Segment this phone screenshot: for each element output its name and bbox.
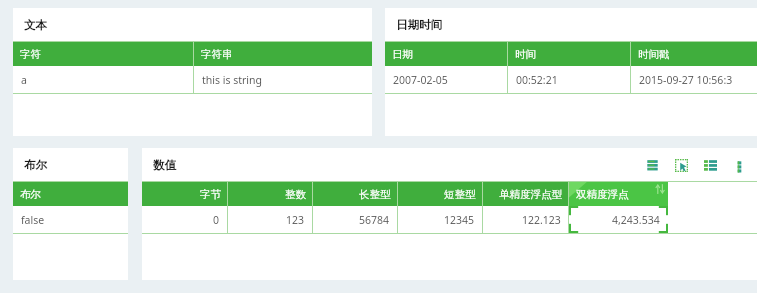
staticText: 时间 [515,48,536,61]
staticText: 短整型 [444,188,476,201]
button[interactable]: 0 [142,206,228,233]
button[interactable]: 12345 [398,206,483,233]
button[interactable]: 日期 [385,42,508,66]
button[interactable]: 2007-02-05 [385,66,508,93]
button[interactable]: a [13,66,194,93]
staticText: 12345 [444,213,475,227]
staticText: 字符串 [201,48,233,61]
button[interactable]: 短整型 [398,182,483,206]
staticText: 双精度浮点 [576,188,629,201]
button[interactable]: 字符串 [194,42,372,66]
button[interactable]: Database [641,154,663,176]
button[interactable]: 双精度浮点 [569,182,668,206]
button[interactable]: 123 [228,206,313,233]
staticText: 122.123 [522,213,561,227]
button[interactable]: 122.123 [483,206,569,233]
staticText: 数值 [153,158,176,172]
button[interactable]: 时间 [508,42,631,66]
button[interactable]: Select region [670,154,692,176]
button[interactable]: 00:52:21 [508,66,631,93]
staticText: 0 [213,213,220,227]
button[interactable]: 2015-09-27 10:56:3 [631,66,757,93]
staticText: 整数 [285,188,306,201]
other: Sort [655,184,665,194]
staticText: 文本 [24,18,47,32]
staticText: this is string [202,73,263,87]
staticText: 单精度浮点型 [499,188,562,201]
button[interactable]: List view [699,154,721,176]
button[interactable]: 字符 [13,42,194,66]
staticText: 2007-02-05 [393,73,448,87]
button[interactable]: 字节 [142,182,228,206]
button[interactable]: 56784 [313,206,398,233]
staticText: 123 [286,213,305,227]
staticText: a [21,73,27,87]
staticText: 56784 [359,213,390,227]
button[interactable]: 时间戳 [631,42,757,66]
staticText: 4,243.534 [612,213,660,227]
staticText: 时间戳 [638,48,670,61]
staticText: 字符 [20,48,41,61]
button[interactable]: this is string [194,66,372,93]
staticText: 字节 [200,188,221,201]
staticText: 2015-09-27 10:56:3 [639,73,733,87]
button[interactable]: 长整型 [313,182,398,206]
button[interactable]: 布尔 [13,182,128,206]
staticText: 布尔 [24,158,47,172]
staticText: 日期时间 [396,18,442,32]
button[interactable]: 整数 [228,182,313,206]
staticText: 日期 [392,48,413,61]
button[interactable]: More options [728,154,750,176]
staticText: 长整型 [359,188,391,201]
button[interactable]: 单精度浮点型 [483,182,569,206]
staticText: false [21,213,45,227]
staticText: 00:52:21 [516,73,558,87]
button[interactable]: 4,243.534 [569,206,668,233]
button[interactable]: false [13,206,128,233]
staticText: 布尔 [20,188,41,201]
